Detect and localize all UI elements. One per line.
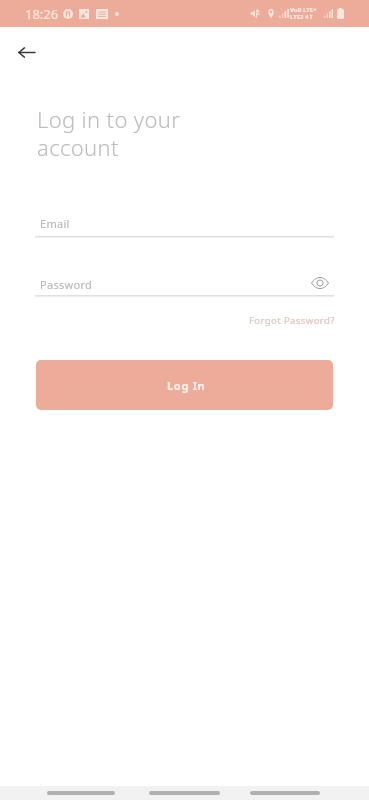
button[interactable]: Forgot Password?	[242, 306, 342, 335]
staticText: Forgot Password?	[249, 314, 335, 327]
button[interactable]: Back	[250, 791, 320, 795]
staticText: 18:26	[25, 5, 59, 23]
button[interactable]: Log In	[36, 360, 333, 410]
staticText: Log In	[167, 378, 206, 393]
staticText: Password	[40, 277, 93, 292]
staticText: Log in to your account	[37, 104, 181, 162]
button[interactable]: Home	[149, 791, 220, 795]
staticText: Email	[40, 216, 70, 231]
button[interactable]: Recents	[47, 791, 115, 795]
button[interactable]: Show password	[311, 274, 329, 292]
staticText: VoB LTE+ LTE2 4↑	[290, 6, 317, 21]
button[interactable]: Back	[6, 32, 46, 72]
